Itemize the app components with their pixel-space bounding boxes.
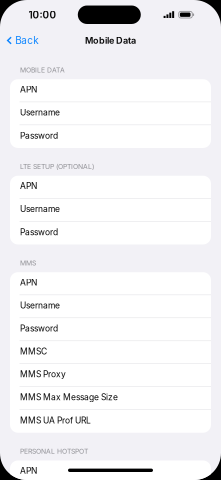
staticText: Mobile Data bbox=[85, 35, 136, 46]
button[interactable]: MMS UA Prof URL bbox=[10, 410, 211, 433]
button[interactable]: MMSC bbox=[10, 341, 211, 363]
button[interactable]: Password bbox=[10, 222, 211, 244]
button[interactable]: Username bbox=[10, 102, 211, 125]
button[interactable]: APN bbox=[10, 176, 211, 198]
staticText: LTE SETUP (OPTIONAL) bbox=[20, 162, 94, 171]
button[interactable]: Password bbox=[10, 125, 211, 148]
staticText: Username bbox=[20, 204, 60, 214]
button[interactable]: APN bbox=[10, 79, 211, 102]
button[interactable]: Back bbox=[0, 31, 43, 49]
staticText: MMS Max Message Size bbox=[20, 392, 118, 402]
button[interactable]: Password bbox=[10, 318, 211, 340]
staticText: MMSC bbox=[20, 346, 47, 356]
staticText: APN bbox=[20, 277, 37, 287]
button[interactable]: APN bbox=[10, 460, 211, 480]
staticText: PERSONAL HOTSPOT bbox=[20, 447, 88, 455]
staticText: Back bbox=[15, 34, 38, 46]
button[interactable]: Username bbox=[10, 295, 211, 317]
staticText: APN bbox=[20, 181, 37, 191]
staticText: APN bbox=[20, 466, 37, 476]
staticText: MMS UA Prof URL bbox=[20, 415, 91, 425]
button[interactable]: APN bbox=[10, 272, 211, 295]
staticText: Password bbox=[20, 227, 58, 237]
staticText: Password bbox=[20, 323, 58, 333]
staticText: Password bbox=[20, 130, 58, 141]
staticText: Username bbox=[20, 107, 60, 117]
staticText: Username bbox=[20, 300, 60, 310]
button[interactable]: MMS Proxy bbox=[10, 364, 211, 386]
button[interactable]: Username bbox=[10, 199, 211, 221]
button[interactable]: MMS Max Message Size bbox=[10, 387, 211, 409]
staticText: 10:00 bbox=[28, 9, 56, 21]
staticText: APN bbox=[20, 84, 37, 95]
staticText: MMS bbox=[20, 259, 36, 267]
staticText: MOBILE DATA bbox=[20, 66, 65, 74]
staticText: MMS Proxy bbox=[20, 369, 66, 379]
